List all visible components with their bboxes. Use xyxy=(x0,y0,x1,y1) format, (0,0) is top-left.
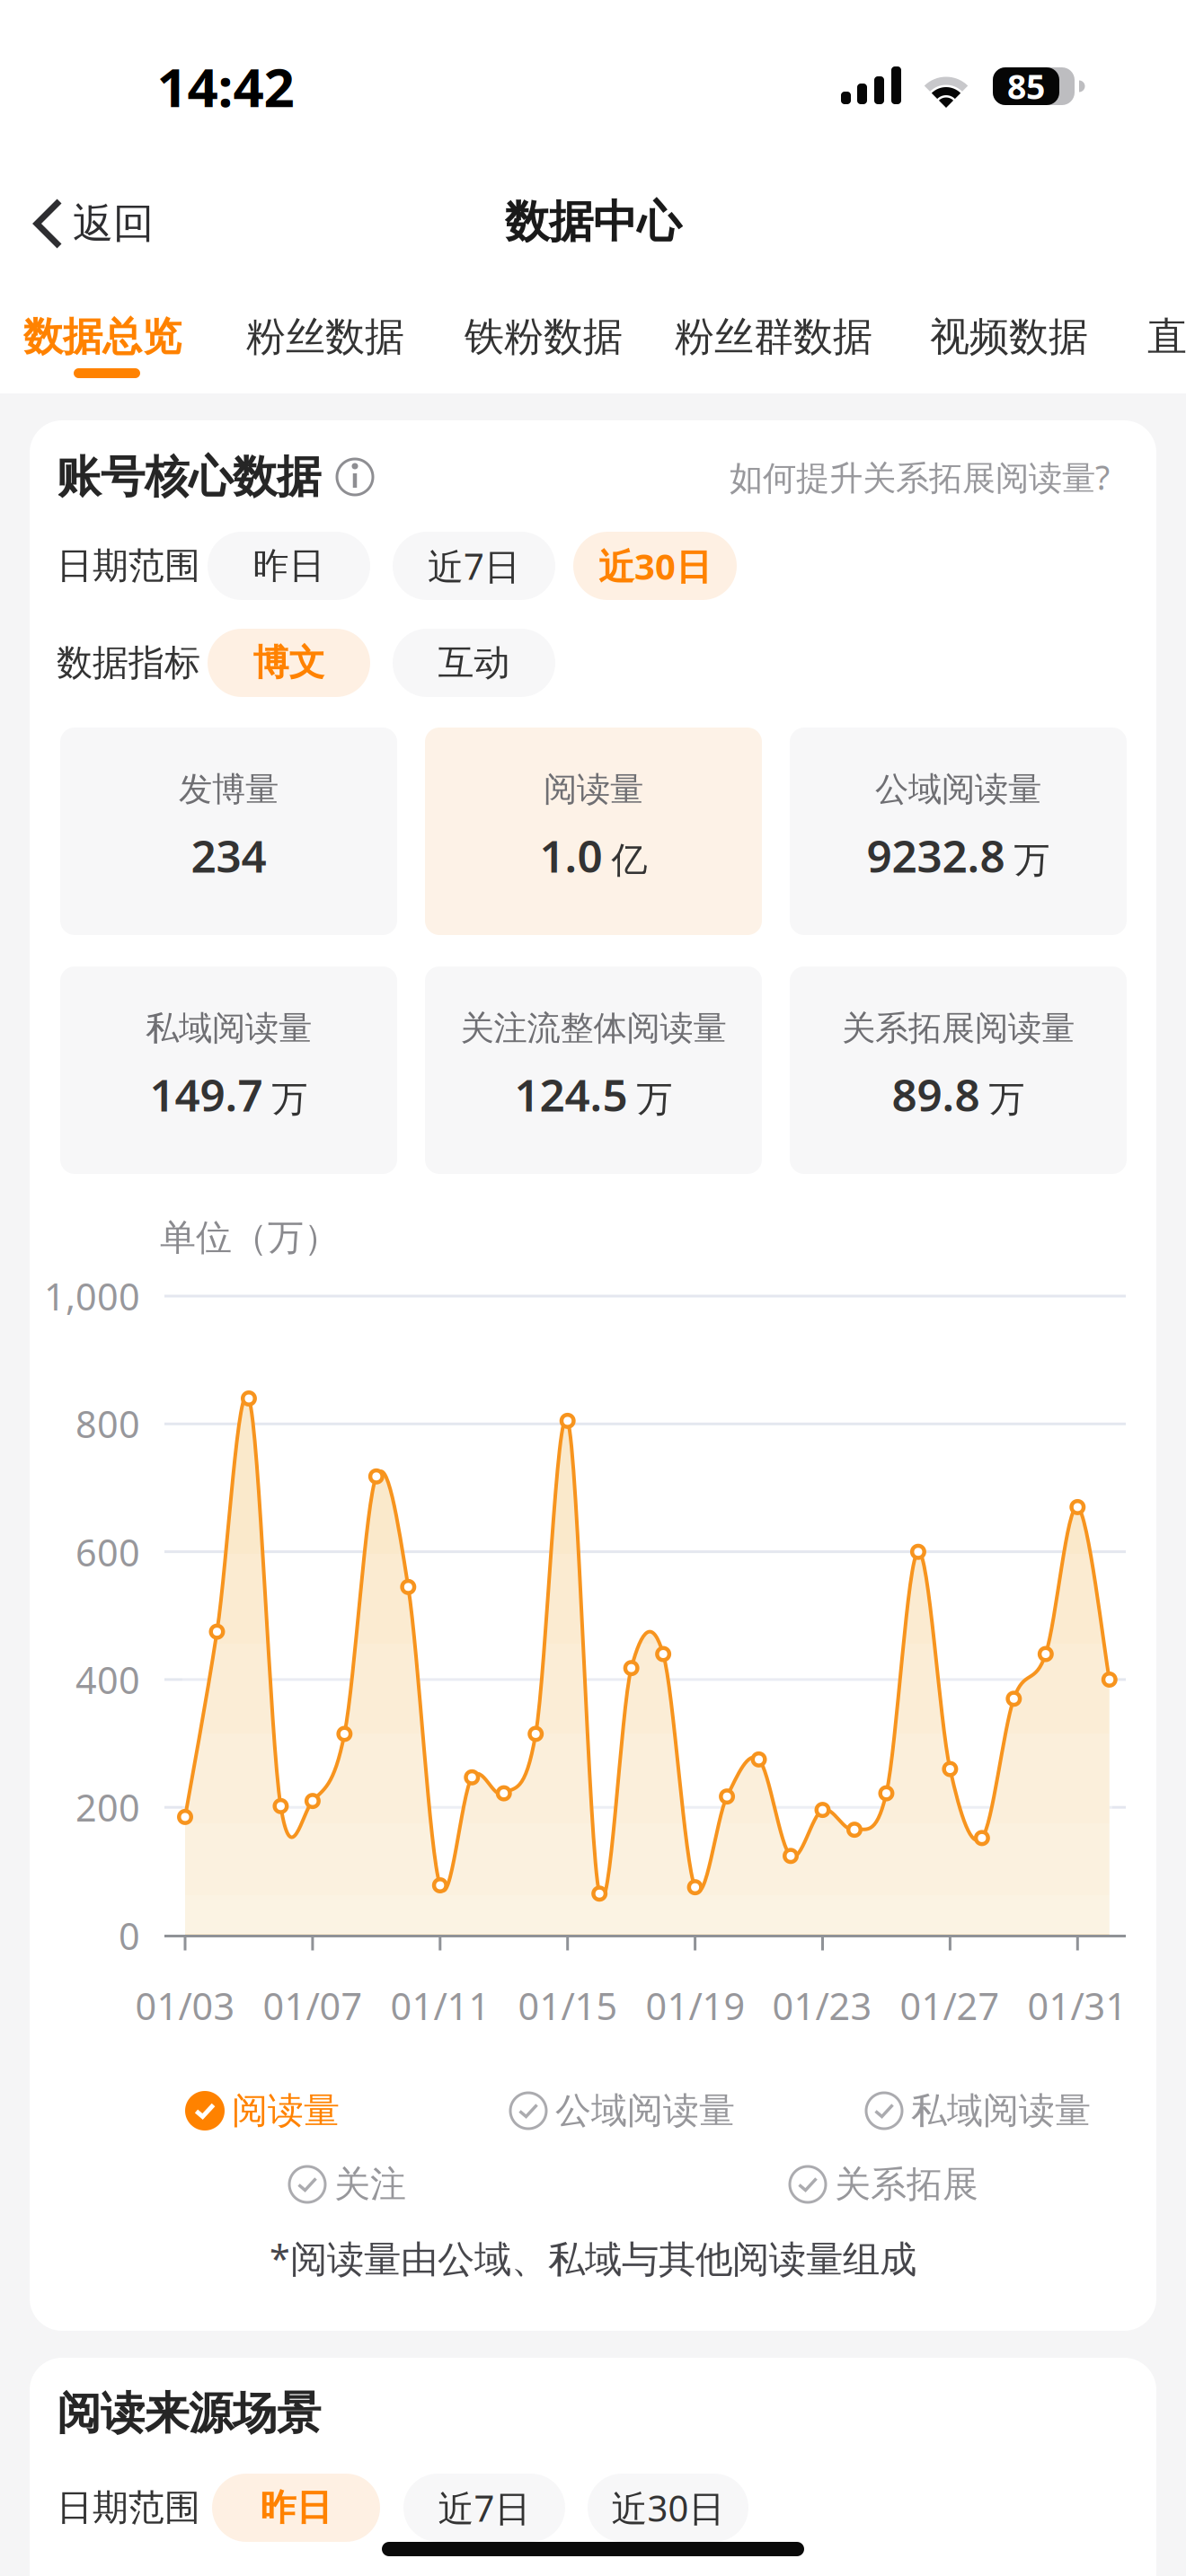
staticText: 昨日 xyxy=(260,2486,332,2530)
staticText: 01/07 xyxy=(263,1981,363,2030)
staticText: 粉丝群数据 xyxy=(675,313,872,361)
staticText: 14:42 xyxy=(157,50,294,122)
staticText: 亿 xyxy=(611,838,647,882)
staticText: 公域阅读量 xyxy=(555,2089,735,2133)
staticText: 万 xyxy=(272,1077,308,1121)
staticText: 关注流整体阅读量 xyxy=(460,1008,726,1049)
staticText: 600 xyxy=(75,1527,140,1577)
staticText: 1,000 xyxy=(44,1271,140,1321)
staticText: 数据中心 xyxy=(505,195,681,249)
staticText: 阅读来源场景 xyxy=(57,2386,321,2441)
staticText: *阅读量由公域、私域与其他阅读量组成 xyxy=(270,2233,916,2283)
staticText: 85 xyxy=(1007,64,1045,109)
staticText: 互动 xyxy=(438,641,510,685)
staticText: 800 xyxy=(75,1399,140,1448)
staticText: 视频数据 xyxy=(930,313,1088,361)
staticText: 关系拓展 xyxy=(835,2162,978,2206)
staticText: 关注 xyxy=(334,2162,406,2206)
staticText: 01/19 xyxy=(646,1981,745,2030)
staticText: 数据指标 xyxy=(57,641,200,685)
staticText: 89.8 xyxy=(892,1065,980,1124)
staticText: 公域阅读量 xyxy=(875,769,1041,810)
staticText: 200 xyxy=(75,1783,140,1832)
staticText: 9232.8 xyxy=(867,826,1005,885)
staticText: 发博量 xyxy=(179,769,279,810)
staticText: 阅读量 xyxy=(232,2089,340,2133)
staticText: 近7日 xyxy=(428,542,520,590)
staticText: 数据总览 xyxy=(23,313,181,361)
staticText: 阅读量 xyxy=(544,769,643,810)
staticText: 124.5 xyxy=(514,1065,628,1124)
staticText: 如何提升关系拓展阅读量? xyxy=(730,455,1110,499)
staticText: 昨日 xyxy=(253,544,325,588)
staticText: 万 xyxy=(1014,838,1050,882)
staticText: 日期范围 xyxy=(57,544,200,588)
staticText: 近30日 xyxy=(611,2484,725,2532)
staticText: 账号核心数据 xyxy=(57,450,321,504)
staticText: 万 xyxy=(637,1077,673,1121)
staticText: 01/03 xyxy=(135,1981,235,2030)
staticText: 单位（万） xyxy=(160,1216,340,1260)
staticText: 铁粉数据 xyxy=(465,313,623,361)
staticText: 私域阅读量 xyxy=(911,2089,1091,2133)
staticText: 01/11 xyxy=(390,1981,490,2030)
staticText: 博文 xyxy=(253,641,325,685)
staticText: 400 xyxy=(75,1655,140,1704)
staticText: 万 xyxy=(989,1077,1025,1121)
staticText: 0 xyxy=(119,1911,140,1960)
staticText: 近30日 xyxy=(598,542,712,590)
staticText: 01/31 xyxy=(1027,1981,1127,2030)
staticText: 关系拓展阅读量 xyxy=(842,1008,1075,1049)
staticText: 粉丝数据 xyxy=(246,313,404,361)
staticText: 返回 xyxy=(73,199,154,249)
staticText: 日期范围 xyxy=(57,2486,200,2530)
staticText: 01/27 xyxy=(900,1981,1000,2030)
staticText: 234 xyxy=(191,826,266,885)
staticText: 149.7 xyxy=(150,1065,263,1124)
staticText: 私域阅读量 xyxy=(146,1008,312,1049)
staticText: 01/23 xyxy=(772,1981,872,2030)
staticText: 直播数据 xyxy=(1147,313,1186,361)
staticText: 近7日 xyxy=(438,2484,531,2532)
staticText: 01/15 xyxy=(518,1981,618,2030)
staticText: 1.0 xyxy=(540,826,602,885)
